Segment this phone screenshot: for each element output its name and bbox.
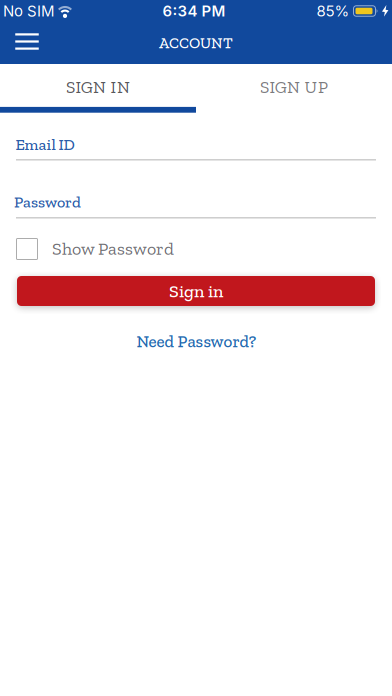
staticText: No SIM: [3, 2, 55, 20]
button[interactable]: Menu: [7, 25, 47, 58]
button[interactable]: Password: [16, 188, 376, 219]
staticText: Show Password: [52, 238, 174, 259]
button[interactable]: Show Password: [16, 238, 37, 259]
staticText: SIGN IN: [66, 76, 130, 97]
staticText: 6:34 PM: [162, 2, 225, 20]
staticText: SIGN UP: [260, 76, 328, 97]
button[interactable]: SIGN IN: [0, 65, 196, 108]
staticText: Password: [14, 192, 81, 212]
button[interactable]: SIGN UP: [196, 65, 392, 108]
button[interactable]: Email ID: [16, 130, 376, 161]
button[interactable]: Need Password?: [128, 327, 264, 356]
staticText: Sign in: [169, 280, 223, 302]
staticText: Need Password?: [136, 331, 256, 352]
staticText: ACCOUNT: [159, 34, 233, 52]
staticText: Email ID: [15, 135, 74, 154]
staticText: 85%: [316, 2, 349, 20]
button[interactable]: Sign in: [17, 276, 375, 306]
